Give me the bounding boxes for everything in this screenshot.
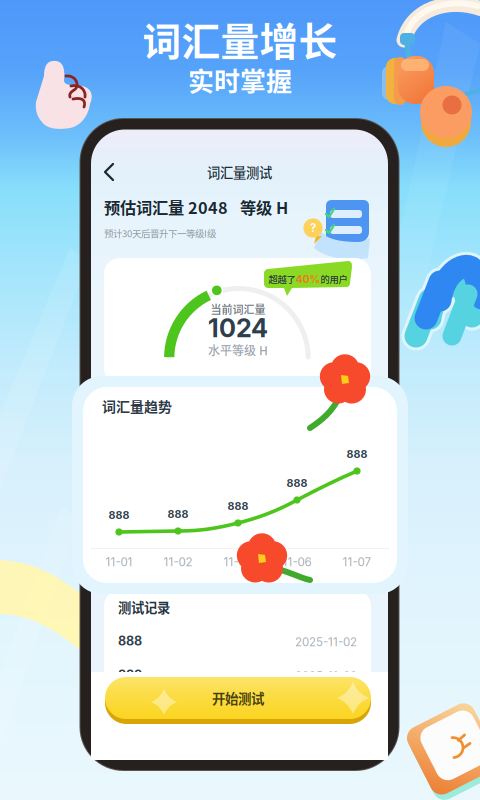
- staticText: 888: [118, 633, 142, 649]
- staticText: 1024: [208, 313, 268, 343]
- staticText: 888: [108, 508, 129, 521]
- staticText: 888: [346, 447, 367, 460]
- staticText: 40%: [295, 272, 320, 285]
- staticText: 2025-11-02: [295, 635, 357, 649]
- staticText: 11-02: [163, 555, 192, 569]
- staticText: 11-07: [342, 555, 371, 569]
- staticText: 当前词汇量: [210, 301, 265, 317]
- staticText: 实时掌握: [188, 61, 292, 99]
- staticText: 水平等级 H: [208, 341, 268, 359]
- staticText: 888: [227, 499, 248, 512]
- staticText: 11-06: [282, 555, 311, 569]
- staticText: 的用户: [320, 272, 347, 286]
- button[interactable]: 开始测试: [105, 677, 371, 725]
- button[interactable]: 888: [104, 662, 371, 688]
- staticText: 2025-11-02: [295, 669, 357, 683]
- staticText: 11-03: [223, 555, 252, 569]
- staticText: 词汇量测试: [207, 162, 272, 182]
- staticText: 开始测试: [212, 688, 264, 708]
- staticText: 词汇量增长: [142, 11, 337, 67]
- staticText: 词汇量趋势: [102, 396, 172, 416]
- staticText: 888: [286, 476, 307, 489]
- staticText: 11-01: [105, 555, 132, 569]
- staticText: ?: [310, 221, 316, 235]
- staticText: 超越了: [268, 272, 295, 286]
- staticText: 预估词汇量 2048 等级 H: [104, 195, 288, 219]
- button[interactable]: 888: [104, 628, 371, 654]
- staticText: 888: [167, 507, 188, 520]
- button[interactable]: Back: [95, 156, 129, 188]
- staticText: 测试记录: [118, 597, 170, 617]
- staticText: 预计30天后晋升下一等级I级: [104, 226, 216, 240]
- staticText: 888: [118, 667, 142, 683]
